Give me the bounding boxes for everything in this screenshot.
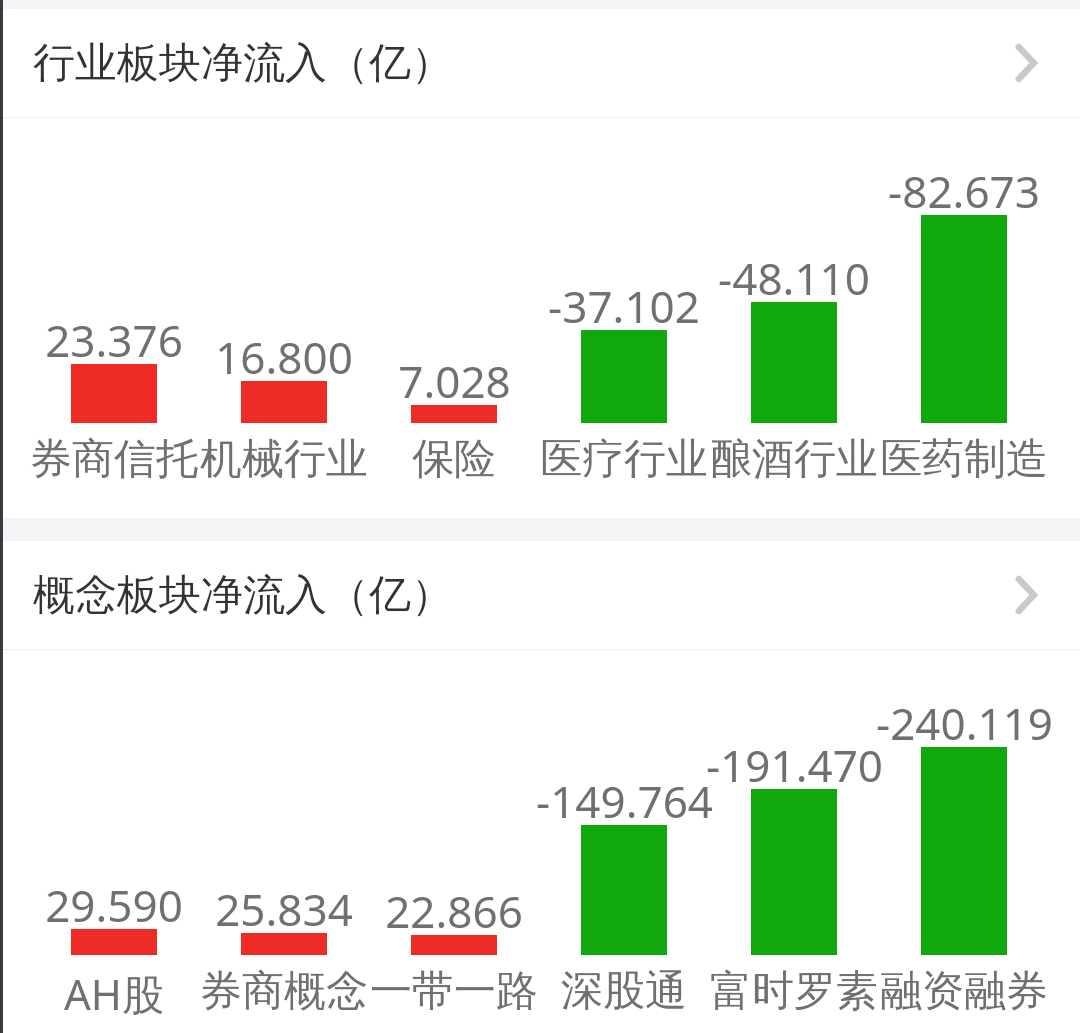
staticText: -82.673 <box>888 161 1040 221</box>
staticText: 一带一路 <box>370 965 538 1018</box>
staticText: AH股 <box>64 965 164 1022</box>
staticText: 22.866 <box>385 881 523 941</box>
staticText: 行业板块净流入（亿） <box>33 37 453 90</box>
button[interactable]: 行业板块净流入（亿） <box>0 9 1080 117</box>
staticText: 保险 <box>412 433 496 486</box>
button[interactable]: 概念板块净流入（亿） <box>0 541 1080 649</box>
other: More <box>1006 573 1050 617</box>
staticText: 机械行业 <box>200 433 368 486</box>
staticText: 25.834 <box>215 879 353 939</box>
staticText: 酿酒行业 <box>710 433 878 486</box>
staticText: 医药制造 <box>880 433 1048 486</box>
staticText: 7.028 <box>398 351 511 411</box>
staticText: 概念板块净流入（亿） <box>33 569 453 622</box>
staticText: 融资融券 <box>880 965 1048 1018</box>
staticText: 券商概念 <box>200 965 368 1018</box>
staticText: 16.800 <box>215 327 353 387</box>
staticText: -191.470 <box>706 735 883 795</box>
staticText: 29.590 <box>45 875 183 935</box>
staticText: 券商信托 <box>30 433 198 486</box>
staticText: 深股通 <box>561 965 687 1018</box>
staticText: 医疗行业 <box>540 433 708 486</box>
staticText: 23.376 <box>45 310 183 370</box>
staticText: -240.119 <box>876 693 1053 753</box>
staticText: -48.110 <box>718 248 870 308</box>
staticText: -37.102 <box>548 276 700 336</box>
staticText: 富时罗素 <box>710 965 878 1018</box>
staticText: -149.764 <box>536 771 713 831</box>
other: More <box>1006 41 1050 85</box>
